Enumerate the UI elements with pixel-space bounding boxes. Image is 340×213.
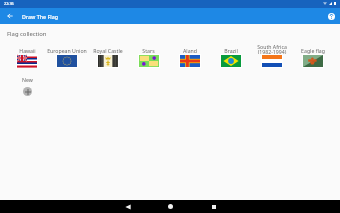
staticText: European Union <box>47 47 87 54</box>
staticText: Eagle flag <box>301 47 325 54</box>
button[interactable]: Help <box>322 8 340 24</box>
staticText: Hawaii <box>19 47 36 54</box>
staticText: Brazil <box>224 47 238 54</box>
button[interactable]: South Africa (1982-1994) <box>251 43 292 68</box>
staticText: 22:36 <box>4 1 14 6</box>
button[interactable]: Royal Castle <box>87 43 128 68</box>
button[interactable]: European Union <box>47 43 87 68</box>
button[interactable]: Back <box>106 200 149 213</box>
button[interactable]: Back <box>0 8 19 24</box>
staticText: New <box>22 76 33 83</box>
staticText: Draw The Flag <box>22 13 58 20</box>
staticText: Flag collection <box>7 30 47 38</box>
button[interactable]: Brazil <box>210 43 251 68</box>
button[interactable]: Recents <box>192 200 235 213</box>
staticText: Royal Castle <box>93 47 123 54</box>
button[interactable]: Hawaii <box>7 43 47 68</box>
button[interactable]: Home <box>149 200 192 213</box>
button[interactable]: Stars <box>128 43 169 68</box>
button[interactable]: Eagle flag <box>292 43 333 68</box>
staticText: Stars <box>142 47 155 54</box>
staticText: Aland <box>183 47 197 54</box>
button[interactable]: New <box>7 76 47 96</box>
button[interactable]: Aland <box>169 43 210 68</box>
staticText: South Africa (1982-1994) <box>257 43 287 54</box>
